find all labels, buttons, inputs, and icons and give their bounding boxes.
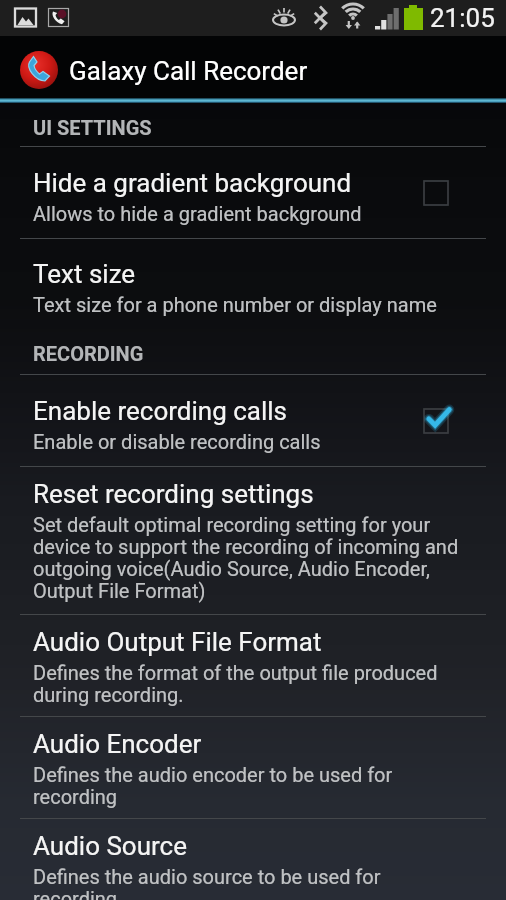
staticText: Enable or disable recording calls — [33, 432, 321, 454]
button[interactable]: Hide a gradient background — [0, 147, 506, 238]
staticText: Audio Encoder — [33, 729, 202, 759]
staticText: Hide a gradient background — [33, 168, 352, 198]
button[interactable]: Enable recording calls — [0, 375, 506, 466]
staticText: UI SETTINGS — [33, 116, 152, 139]
staticText: Text size — [33, 259, 136, 289]
other: Unchecked — [366, 147, 506, 238]
staticText: Set default optimal recording setting fo… — [33, 515, 463, 603]
staticText: 21:05 — [430, 3, 495, 33]
button[interactable]: Audio Output File Format — [0, 615, 506, 716]
other: Checked — [366, 375, 506, 466]
staticText: Defines the format of the output file pr… — [33, 663, 463, 707]
button[interactable]: Galaxy Call Recorder — [0, 36, 506, 98]
staticText: Reset recording settings — [33, 479, 314, 509]
staticText: Defines the audio source to be used for … — [33, 867, 463, 900]
staticText: Allows to hide a gradient background — [33, 204, 362, 226]
button[interactable]: Reset recording settings — [0, 467, 506, 614]
staticText: Audio Output File Format — [33, 627, 322, 657]
button[interactable]: Text size — [0, 239, 506, 331]
staticText: Text size for a phone number or display … — [33, 295, 437, 317]
staticText: Enable recording calls — [33, 396, 288, 426]
staticText: RECORDING — [33, 342, 144, 365]
button[interactable]: Audio Encoder — [0, 717, 506, 818]
staticText: Galaxy Call Recorder — [69, 56, 308, 86]
staticText: Audio Source — [33, 831, 187, 861]
staticText: Defines the audio encoder to be used for… — [33, 765, 463, 809]
button[interactable]: Audio Source — [0, 819, 506, 900]
